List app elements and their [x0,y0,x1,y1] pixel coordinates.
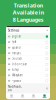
staticText: Deutsch [12,57,23,60]
button[interactable]: Indonesian [6,61,50,67]
staticText: हिन्दी [12,40,17,44]
staticText: Translation Available in 8 Languages [12,2,43,23]
button[interactable]: Settings [39,94,50,98]
staticText: Español [12,46,22,49]
button[interactable]: Türkçe [6,67,50,73]
staticText: Русский [12,79,22,83]
button[interactable]: Français [6,50,50,56]
button[interactable]: Русский [6,78,50,84]
staticText: Notification [8,85,22,92]
button[interactable]: Español [6,45,50,50]
button[interactable]: Malayalam [6,73,50,78]
staticText: Türkçe [12,68,20,71]
button[interactable]: History [28,94,39,98]
staticText: English [12,35,22,38]
button[interactable]: Deutsch [6,56,50,61]
staticText: Indonesian [12,62,28,66]
button[interactable]: English [6,34,50,39]
button[interactable]: Home [6,94,17,98]
button[interactable]: Languages [17,94,28,98]
staticText: Malayalam [12,73,23,77]
staticText: Settings [8,29,19,32]
button[interactable]: हिन्दी [6,39,50,45]
staticText: Français [12,51,21,55]
